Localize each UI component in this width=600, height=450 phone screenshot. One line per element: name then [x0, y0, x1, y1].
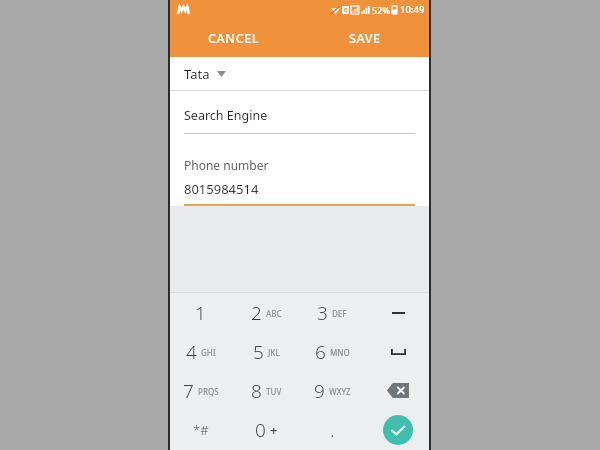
staticText: MNO	[330, 347, 350, 358]
button[interactable]: 1	[168, 293, 233, 332]
staticText: DEF	[332, 308, 347, 319]
staticText: 1	[195, 300, 206, 326]
button[interactable]: SAVE	[299, 19, 431, 57]
button[interactable]: *#	[168, 410, 233, 449]
button[interactable]: Dash	[365, 293, 431, 332]
staticText: CANCEL	[208, 30, 260, 47]
button[interactable]: Done	[365, 410, 431, 449]
staticText: SAVE	[349, 30, 381, 47]
staticText: JKL	[268, 347, 280, 358]
staticText: 7	[183, 378, 194, 404]
staticText: 3	[317, 300, 328, 326]
staticText: Search Engine	[184, 107, 268, 124]
staticText: 8	[251, 378, 262, 404]
staticText: 8015984514	[184, 180, 259, 198]
staticText: WXYZ	[329, 386, 351, 397]
button[interactable]: 9	[299, 371, 365, 410]
button[interactable]: 0	[233, 410, 299, 449]
staticText: 4	[186, 339, 197, 365]
button[interactable]: 6	[299, 332, 365, 371]
button[interactable]: 7	[168, 371, 233, 410]
button[interactable]: CANCEL	[168, 19, 299, 57]
staticText: .	[330, 417, 335, 443]
button[interactable]: Search Engine	[168, 107, 431, 134]
button[interactable]: Tata	[168, 57, 431, 90]
button[interactable]: Phone number	[168, 157, 431, 206]
staticText: 5	[253, 339, 264, 365]
button[interactable]: 5	[233, 332, 299, 371]
button[interactable]: 3	[299, 293, 365, 332]
staticText: 52%	[372, 4, 390, 16]
button[interactable]: Backspace	[365, 371, 431, 410]
button[interactable]: 4	[168, 332, 233, 371]
button[interactable]: 2	[233, 293, 299, 332]
button[interactable]: .	[299, 410, 365, 449]
staticText: *#	[193, 421, 209, 439]
staticText: 9	[314, 378, 325, 404]
staticText: 2	[251, 300, 262, 326]
button[interactable]: Space	[365, 332, 431, 371]
staticText: 0	[255, 417, 266, 443]
staticText: D	[344, 7, 348, 14]
staticText: GHI	[201, 347, 216, 358]
staticText: Phone number	[184, 157, 269, 173]
staticText: Tata	[184, 65, 210, 83]
staticText: PRQS	[198, 386, 219, 397]
staticText: +	[270, 421, 278, 439]
staticText: ABC	[266, 308, 282, 319]
staticText: TUV	[266, 386, 282, 397]
staticText: 6	[315, 339, 326, 365]
button[interactable]: 8	[233, 371, 299, 410]
staticText: 10:49	[400, 3, 425, 16]
